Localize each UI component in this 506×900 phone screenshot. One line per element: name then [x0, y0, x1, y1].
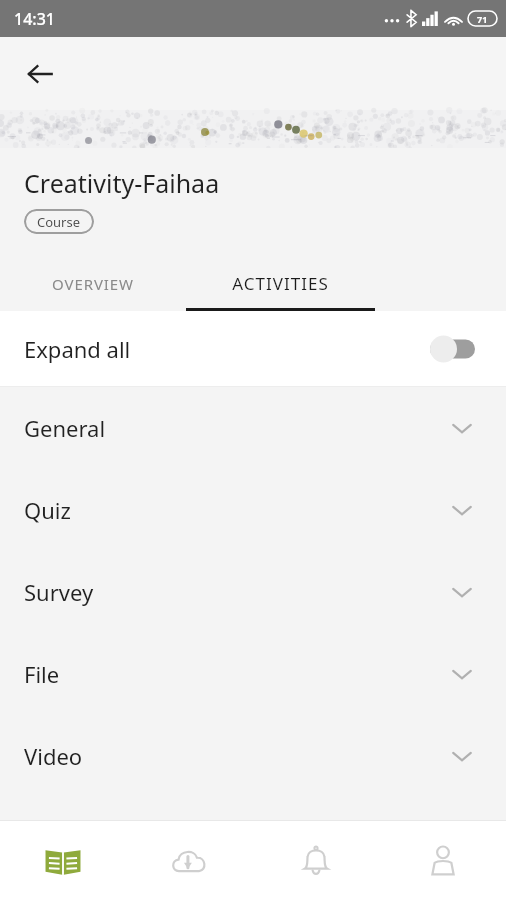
button[interactable]: Expand all	[0, 311, 506, 386]
staticText: OVERVIEW	[52, 274, 134, 294]
button[interactable]: Expand Survey	[440, 570, 484, 614]
button[interactable]: Courses	[0, 821, 126, 900]
staticText: Expand all	[24, 334, 428, 364]
staticText: Quiz	[24, 495, 440, 525]
staticText: Creativity-Faihaa	[24, 166, 220, 200]
staticText: Video	[24, 741, 440, 771]
button[interactable]: Downloads	[126, 821, 252, 900]
staticText: File	[24, 659, 440, 689]
staticText: 71	[477, 13, 488, 25]
staticText: Survey	[24, 577, 440, 607]
staticText: 14:31	[14, 8, 55, 30]
button[interactable]: File	[0, 633, 506, 715]
button[interactable]: Survey	[0, 551, 506, 633]
button[interactable]: Video	[0, 715, 506, 797]
button[interactable]: Expand General	[440, 406, 484, 450]
button[interactable]: ACTIVITIES	[186, 256, 375, 311]
staticText: Course	[37, 213, 81, 231]
staticText: General	[24, 413, 440, 443]
button[interactable]: OVERVIEW	[0, 256, 186, 311]
button[interactable]: Back	[16, 50, 64, 98]
button[interactable]: Profile	[379, 821, 506, 900]
button[interactable]: General	[0, 387, 506, 469]
staticText: ACTIVITIES	[232, 272, 329, 295]
button[interactable]: Course	[24, 209, 94, 234]
button[interactable]: Quiz	[0, 469, 506, 551]
button[interactable]: Expand Quiz	[440, 488, 484, 532]
button[interactable]: Notifications	[252, 821, 379, 900]
button[interactable]: Expand File	[440, 652, 484, 696]
button[interactable]: Expand Video	[440, 734, 484, 778]
button[interactable]: Expand all toggle	[428, 332, 480, 366]
